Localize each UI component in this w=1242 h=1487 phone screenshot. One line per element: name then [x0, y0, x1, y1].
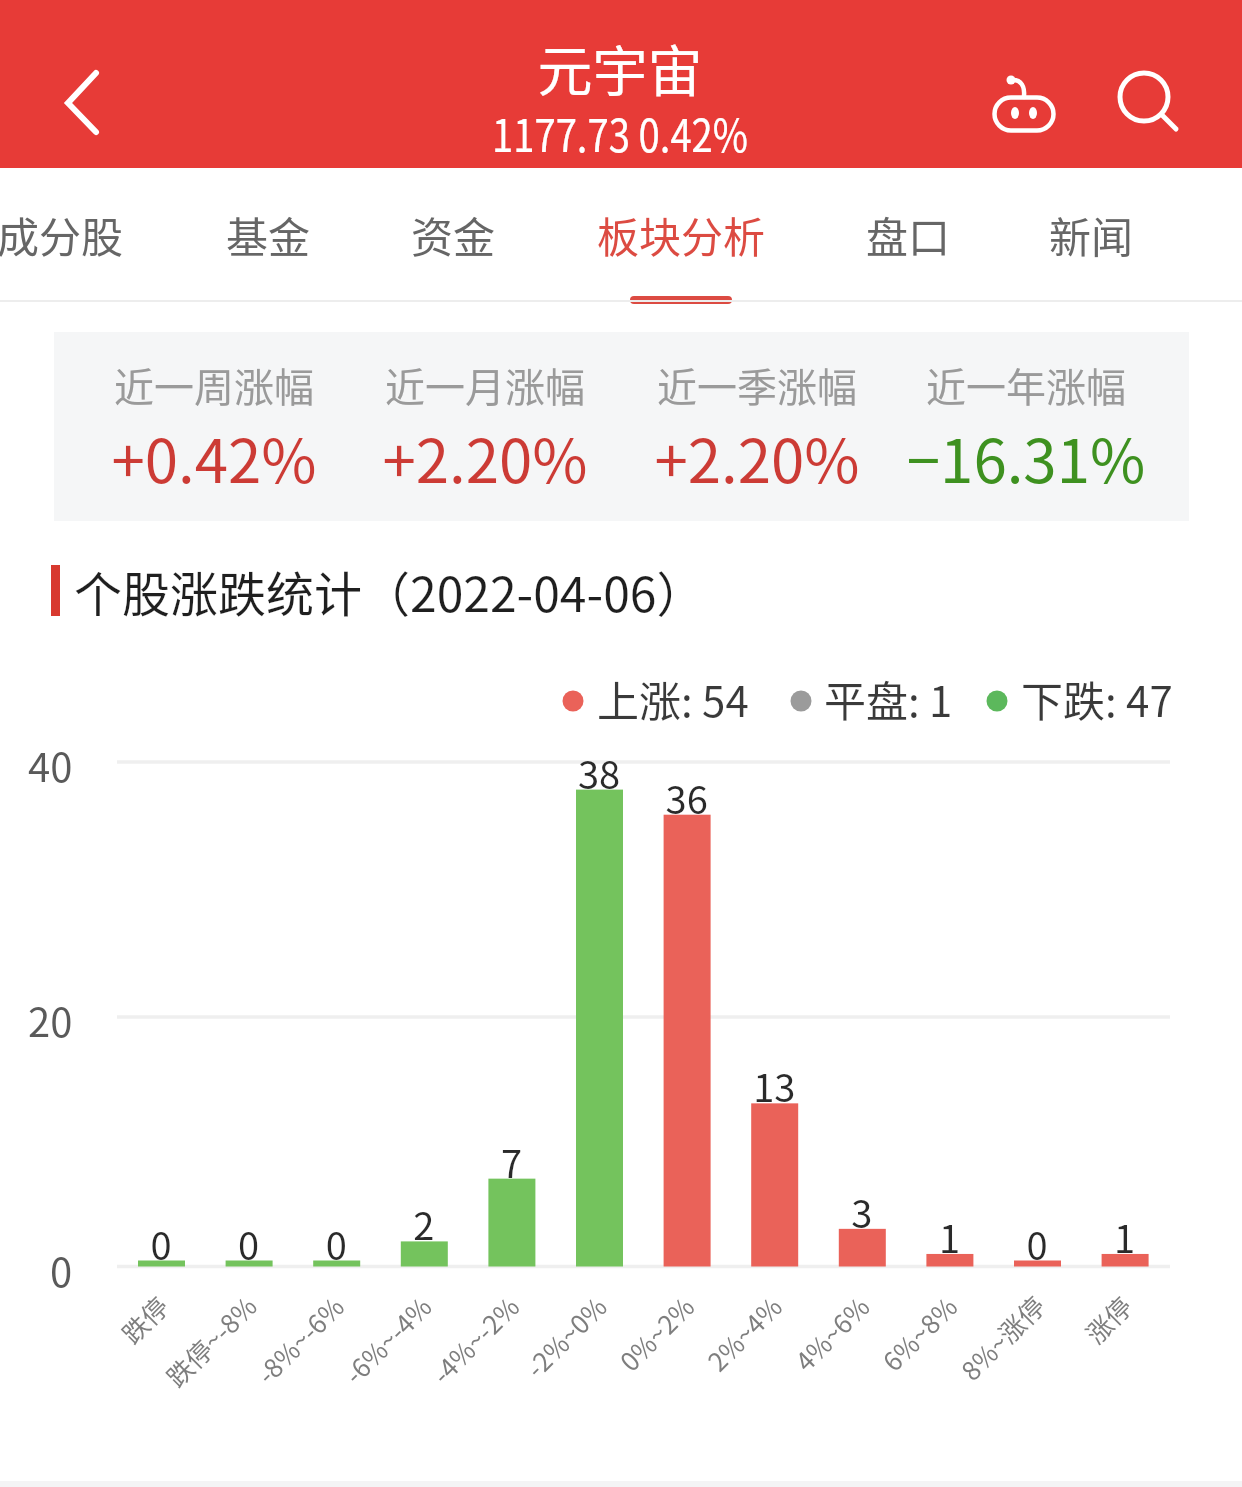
button[interactable]: 成分股 — [0, 168, 190, 300]
staticText: 近一年涨幅 — [896, 356, 1156, 414]
staticText: 成分股 — [0, 204, 124, 265]
staticText: 近一周涨幅 — [84, 356, 344, 414]
button[interactable]: 基金 — [138, 168, 398, 300]
button[interactable]: Search — [1104, 48, 1214, 168]
staticText: 近一月涨幅 — [355, 356, 615, 414]
staticText: 个股涨跌统计（2022-04-06） — [74, 556, 705, 626]
staticText: +0.42% — [84, 413, 344, 500]
button[interactable]: AI Assistant — [963, 48, 1083, 168]
staticText: 新闻 — [1049, 204, 1134, 265]
staticText: 盘口 — [866, 204, 951, 265]
staticText: 基金 — [226, 204, 311, 265]
button[interactable]: 资金 — [323, 168, 583, 300]
button[interactable]: 盘口 — [778, 168, 1038, 300]
staticText: 资金 — [411, 204, 496, 265]
staticText: 近一季涨幅 — [627, 356, 887, 414]
staticText: 1177.73 0.42% — [450, 100, 790, 165]
staticText: −16.31% — [896, 413, 1156, 500]
button[interactable]: 板块分析 — [551, 168, 811, 300]
staticText: 元宇宙 — [420, 27, 820, 107]
staticText: +2.20% — [355, 413, 615, 500]
staticText: +2.20% — [627, 413, 887, 500]
button[interactable]: Back — [0, 18, 140, 158]
staticText: 板块分析 — [597, 204, 766, 265]
button[interactable]: 新闻 — [961, 168, 1221, 300]
